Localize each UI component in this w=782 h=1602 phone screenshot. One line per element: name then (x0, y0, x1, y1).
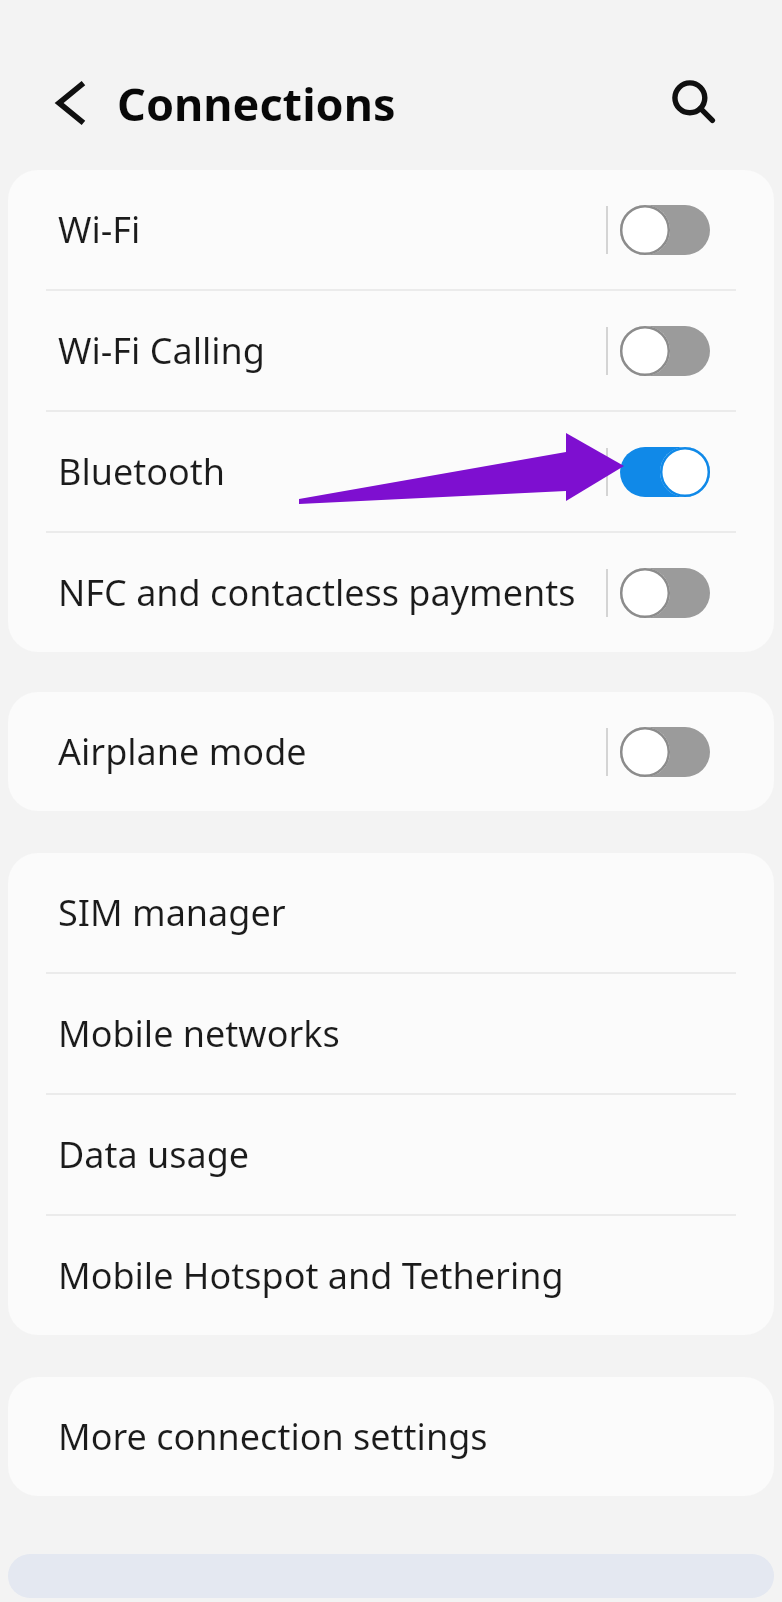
button[interactable]: Mobile networks (8, 974, 774, 1093)
staticText: More connection settings (58, 1412, 488, 1461)
staticText: SIM manager (58, 888, 286, 937)
staticText: Airplane mode (58, 727, 606, 776)
button[interactable]: Wi-Fi (8, 170, 774, 289)
button[interactable]: Airplane mode (8, 692, 774, 811)
staticText: Connections (117, 73, 396, 134)
staticText: Data usage (58, 1130, 250, 1179)
staticText: NFC and contactless payments (58, 568, 606, 617)
button[interactable]: Back (28, 66, 102, 140)
button[interactable]: Mobile Hotspot and Tethering (8, 1216, 774, 1335)
button[interactable]: More connection settings (8, 1377, 774, 1496)
button[interactable]: NFC and contactless payments (8, 533, 774, 652)
staticText: Mobile Hotspot and Tethering (58, 1251, 564, 1300)
staticText: Wi-Fi Calling (58, 326, 606, 375)
button[interactable]: SIM manager (8, 853, 774, 972)
button[interactable]: Bluetooth (8, 412, 774, 531)
staticText: Mobile networks (58, 1009, 340, 1058)
button[interactable]: Data usage (8, 1095, 774, 1214)
staticText: Wi-Fi (58, 205, 606, 254)
button[interactable]: Search (653, 61, 735, 143)
button[interactable]: Wi-Fi Calling (8, 291, 774, 410)
staticText: Bluetooth (58, 447, 606, 496)
